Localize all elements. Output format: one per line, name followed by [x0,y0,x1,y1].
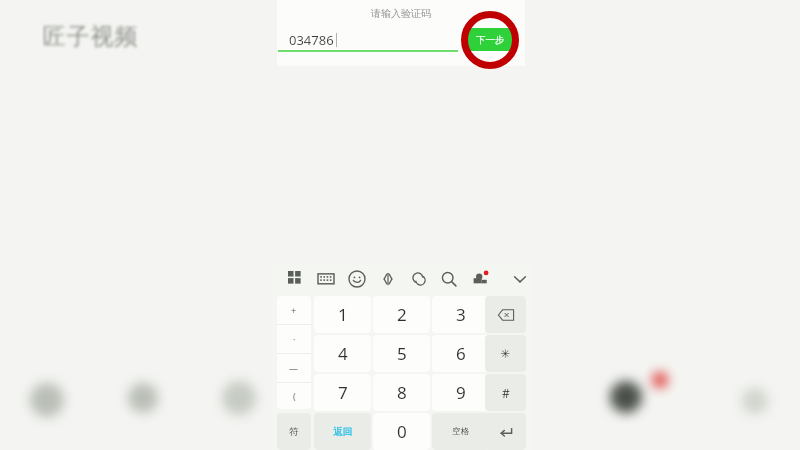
staticText: 4 [338,342,348,365]
button[interactable]: 空格 [432,413,489,450]
staticText: 8 [397,381,407,404]
button[interactable]: Keyboard layouts [288,271,304,287]
staticText: + [291,304,297,316]
staticText: 下一步 [476,34,505,46]
button[interactable]: 2 [373,296,430,333]
button[interactable]: 1 [314,296,371,333]
staticText: 符 [289,426,299,438]
staticText: · [293,333,296,345]
button[interactable]: Backspace [485,296,526,333]
button[interactable]: ✳ [485,335,526,372]
button[interactable]: Attach [411,271,427,287]
staticText: ( [293,390,296,402]
staticText: — [289,362,299,374]
staticText: 034786 [289,31,334,49]
staticText: # [502,385,510,401]
button[interactable]: 3 [432,296,489,333]
button[interactable]: 5 [373,335,430,372]
staticText: 5 [397,342,407,365]
staticText: 匠子视频 [42,22,138,51]
staticText: 9 [456,381,466,404]
button[interactable]: 8 [373,374,430,411]
button[interactable]: + [277,296,311,324]
button[interactable]: 0 [373,413,430,450]
button[interactable]: Voice input [380,271,396,287]
button[interactable]: 7 [314,374,371,411]
button[interactable]: ( [277,383,311,409]
button[interactable]: Theme [472,271,488,287]
staticText: 空格 [452,426,469,437]
button[interactable]: 9 [432,374,489,411]
button[interactable]: Search [441,271,457,287]
staticText: 6 [456,342,466,365]
staticText: 0 [397,420,407,443]
button[interactable]: 4 [314,335,371,372]
button[interactable]: — [277,354,311,382]
button[interactable]: Hide keyboard [512,271,528,287]
staticText: ✳ [500,347,511,361]
button[interactable]: Switch keyboard [318,271,334,287]
button[interactable]: Enter [485,413,526,450]
staticText: 返回 [333,426,352,438]
staticText: 3 [456,303,466,326]
staticText: 1 [338,303,348,326]
button[interactable]: 6 [432,335,489,372]
button[interactable]: 下一步 [468,28,512,51]
button[interactable]: 符 [277,413,311,450]
button[interactable]: Emoji [349,271,365,287]
staticText: 2 [397,303,407,326]
staticText: 请输入验证码 [277,7,525,20]
staticText: 7 [338,381,348,404]
button[interactable]: · [277,325,311,353]
button[interactable]: # [485,374,526,411]
button[interactable]: 返回 [314,413,371,450]
